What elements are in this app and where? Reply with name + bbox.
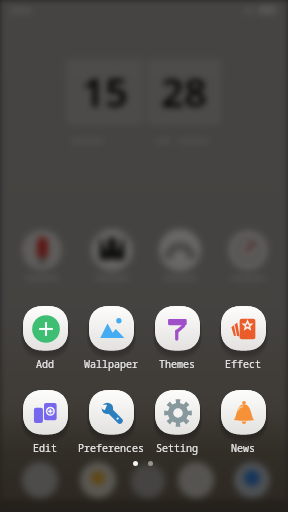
staticText: Preferences (78, 441, 144, 455)
button[interactable]: Themes (144, 306, 210, 371)
staticText: 28 (161, 64, 207, 118)
staticText: Add (36, 357, 54, 371)
staticText: Wallpaper (84, 357, 138, 371)
staticText: Effect (225, 357, 261, 371)
button[interactable]: Effect (210, 306, 276, 371)
button[interactable]: Wallpaper (78, 306, 144, 371)
staticText: Themes (159, 357, 195, 371)
staticText: 15 (82, 64, 128, 118)
button[interactable]: News (210, 390, 276, 455)
staticText: News (231, 441, 255, 455)
button[interactable]: Add (12, 306, 78, 371)
staticText: Edit (33, 441, 57, 455)
button[interactable]: Setting (144, 390, 210, 455)
button[interactable]: Edit (12, 390, 78, 455)
button[interactable]: Page 1 (133, 461, 138, 466)
button[interactable]: Page 2 (148, 461, 153, 466)
staticText: Setting (156, 441, 198, 455)
button[interactable]: Preferences (78, 390, 144, 455)
